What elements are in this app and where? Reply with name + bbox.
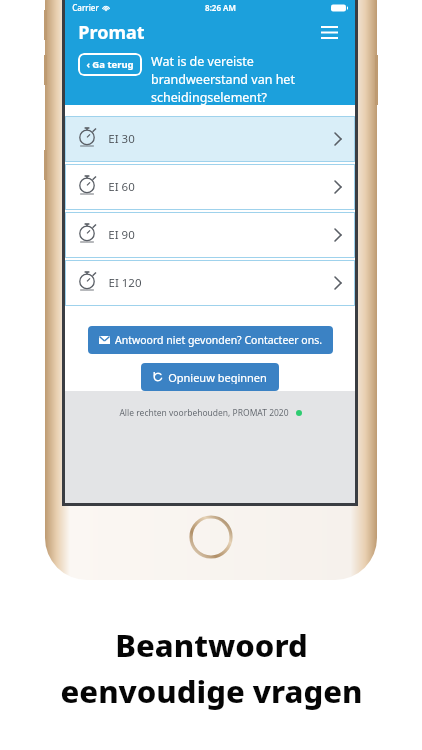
staticText: Opnieuw beginnen: [168, 370, 267, 384]
staticText: EI 30: [108, 131, 135, 147]
button[interactable]: EI 90: [65, 212, 355, 258]
button[interactable]: ‹ Ga terug: [78, 53, 142, 76]
staticText: Antwoord niet gevonden? Contacteer ons.: [115, 333, 322, 347]
staticText: EI 90: [108, 227, 135, 243]
button[interactable]: EI 60: [65, 164, 355, 210]
button[interactable]: EI 30: [65, 116, 355, 162]
staticText: Promat: [78, 20, 145, 45]
button[interactable]: EI 120: [65, 260, 355, 306]
staticText: Wat is de vereiste brandweerstand van he…: [151, 53, 342, 105]
staticText: EI 60: [108, 179, 135, 195]
staticText: Beantwoord: [115, 624, 308, 666]
button[interactable]: Antwoord niet gevonden? Contacteer ons.: [88, 326, 333, 354]
staticText: 8:26 AM: [205, 2, 236, 13]
button[interactable]: Menu: [316, 19, 342, 45]
button[interactable]: Opnieuw beginnen: [141, 363, 279, 391]
staticText: ‹ Ga terug: [86, 58, 134, 71]
staticText: Carrier: [72, 2, 99, 13]
staticText: eenvoudige vragen: [60, 670, 363, 712]
staticText: Alle rechten voorbehouden, PROMAT 2020: [119, 407, 289, 419]
staticText: EI 120: [108, 275, 142, 291]
